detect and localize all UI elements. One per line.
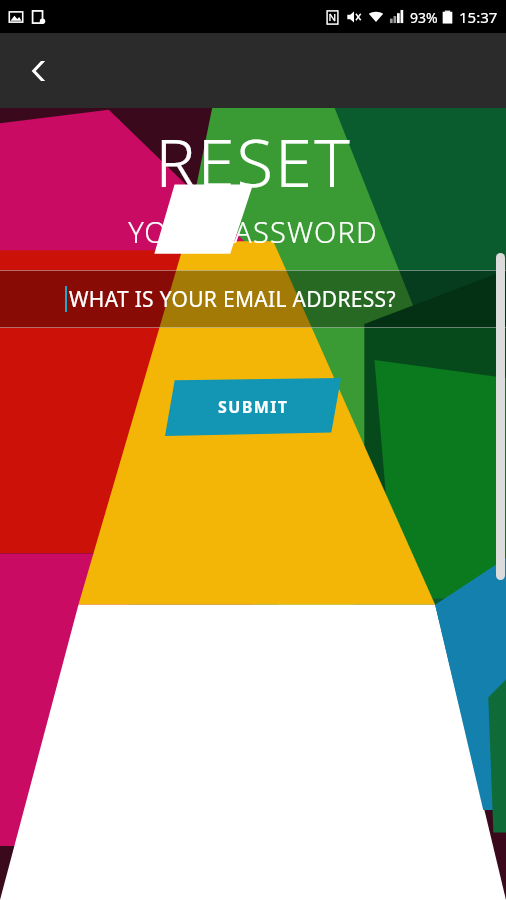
staticText: YOUR PASSWORD — [128, 212, 378, 251]
staticText: RESET — [155, 115, 352, 206]
button[interactable]: WHAT IS YOUR EMAIL ADDRESS? — [0, 270, 506, 328]
staticText: 93% — [410, 8, 438, 27]
button[interactable]: Back — [18, 48, 64, 94]
staticText: WHAT IS YOUR EMAIL ADDRESS? — [69, 285, 396, 314]
staticText: 15:37 — [459, 7, 498, 27]
button[interactable]: SUBMIT — [165, 378, 341, 436]
staticText: SUBMIT — [218, 396, 289, 418]
